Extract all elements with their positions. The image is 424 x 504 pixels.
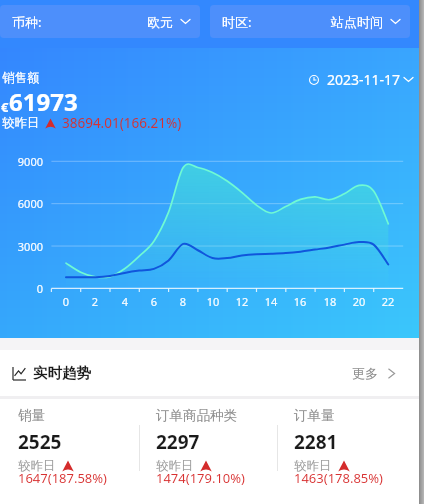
staticText: 实时趋势 — [33, 364, 91, 382]
staticText: 2281 — [294, 429, 338, 455]
staticText: 2297 — [156, 429, 200, 455]
staticText: 欧元 — [147, 14, 173, 30]
button[interactable]: 时区: — [210, 5, 410, 38]
button[interactable]: 币种: — [0, 5, 200, 38]
staticText: 2525 — [18, 429, 62, 455]
staticText: 更多 — [352, 365, 378, 381]
button[interactable]: 实时趋势 — [0, 350, 419, 396]
staticText: € — [1, 98, 9, 116]
staticText: 销售额 — [2, 70, 40, 86]
staticText: 3000 — [0, 239, 43, 254]
staticText: 10 — [199, 294, 227, 309]
staticText: 38694.01(166.21%) — [62, 114, 182, 132]
staticText: 61973 — [9, 85, 78, 118]
staticText: 1647(187.58%) — [18, 469, 108, 487]
staticText: 订单量 — [294, 407, 335, 424]
staticText: 18 — [316, 294, 344, 309]
button[interactable]: 订单量 — [290, 407, 422, 492]
staticText: 较昨日 — [294, 458, 332, 474]
staticText: 较昨日 — [2, 115, 40, 131]
staticText: 时区: — [222, 13, 252, 31]
staticText: 8 — [169, 294, 197, 309]
staticText: 币种: — [12, 13, 42, 31]
staticText: 1463(178.85%) — [294, 469, 384, 487]
staticText: 较昨日 — [156, 458, 194, 474]
staticText: 站点时间 — [331, 14, 383, 30]
button[interactable]: 销量 — [14, 407, 146, 492]
staticText: 0 — [0, 281, 43, 296]
staticText: 2 — [81, 294, 109, 309]
button[interactable]: Select date — [309, 70, 413, 89]
staticText: 订单商品种类 — [156, 407, 237, 424]
staticText: 9000 — [0, 154, 43, 169]
staticText: 销量 — [18, 407, 45, 424]
staticText: 4 — [111, 294, 139, 309]
staticText: 6000 — [0, 196, 43, 211]
staticText: 较昨日 — [18, 458, 56, 474]
button[interactable]: 订单商品种类 — [152, 407, 284, 492]
staticText: 16 — [286, 294, 314, 309]
staticText: 0 — [52, 294, 80, 309]
staticText: 22 — [374, 294, 402, 309]
staticText: 12 — [228, 294, 256, 309]
staticText: 1474(179.10%) — [156, 469, 246, 487]
staticText: 6 — [140, 294, 168, 309]
staticText: 20 — [345, 294, 373, 309]
staticText: 2023-11-17 — [327, 70, 401, 89]
staticText: 14 — [257, 294, 285, 309]
